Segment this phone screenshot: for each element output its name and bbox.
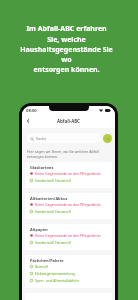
staticText: Altpapier — [30, 227, 49, 232]
button[interactable]: Sondermüll Hausmüll — [30, 239, 108, 246]
staticText: Sperr- und Altmetallabfuhr — [35, 278, 80, 283]
button[interactable]: Sondermüll Hausmüll — [30, 208, 108, 215]
staticText: Sondermüll Hausmüll — [35, 240, 71, 245]
staticText: Altbatterien/Akkus — [30, 196, 68, 201]
staticText: Päckchen/Pakete — [30, 258, 64, 263]
staticText: Sondermüll Hausmüll — [35, 178, 71, 183]
staticText: Glaskartons — [30, 165, 54, 170]
button[interactable]: Keine Gegenstände an den Pflegedienst — [30, 201, 108, 208]
button[interactable]: Suche — [27, 133, 101, 143]
staticText: Biomüll — [35, 264, 48, 269]
button[interactable]: Filter — [103, 134, 112, 143]
staticText: Keine Gegenstände an den Pflegedienst — [35, 202, 101, 207]
button[interactable]: Keine Gegenstände an den Pflegedienst — [30, 170, 108, 177]
button[interactable]: Biomüll — [30, 263, 108, 270]
button[interactable]: Sondermüll Hausmüll — [30, 177, 108, 184]
button[interactable]: Sperr- und Altmetallabfuhr — [30, 277, 108, 284]
staticText: Suche — [36, 136, 47, 141]
button[interactable]: Zurück — [24, 117, 32, 125]
staticText: Keine Gegenstände an den Pflegedienst — [35, 171, 101, 176]
staticText: Im Abfall-ABC erfahren Sie, welche Haush… — [18, 24, 115, 74]
button[interactable]: Keine Gegenstände an den Pflegedienst — [30, 232, 108, 239]
staticText: Abfall-ABC — [57, 118, 80, 124]
staticText: Sondermüll Hausmüll — [35, 209, 71, 214]
staticText: Elektrogerätesammlung — [35, 271, 75, 276]
staticText: 08:00 — [26, 108, 37, 114]
staticText: Hier sagen wir Ihnen, wo Sie welchen Abf… — [27, 149, 109, 159]
staticText: Keine Gegenstände an den Pflegedienst — [35, 233, 101, 238]
button[interactable]: Elektrogerätesammlung — [30, 270, 108, 277]
